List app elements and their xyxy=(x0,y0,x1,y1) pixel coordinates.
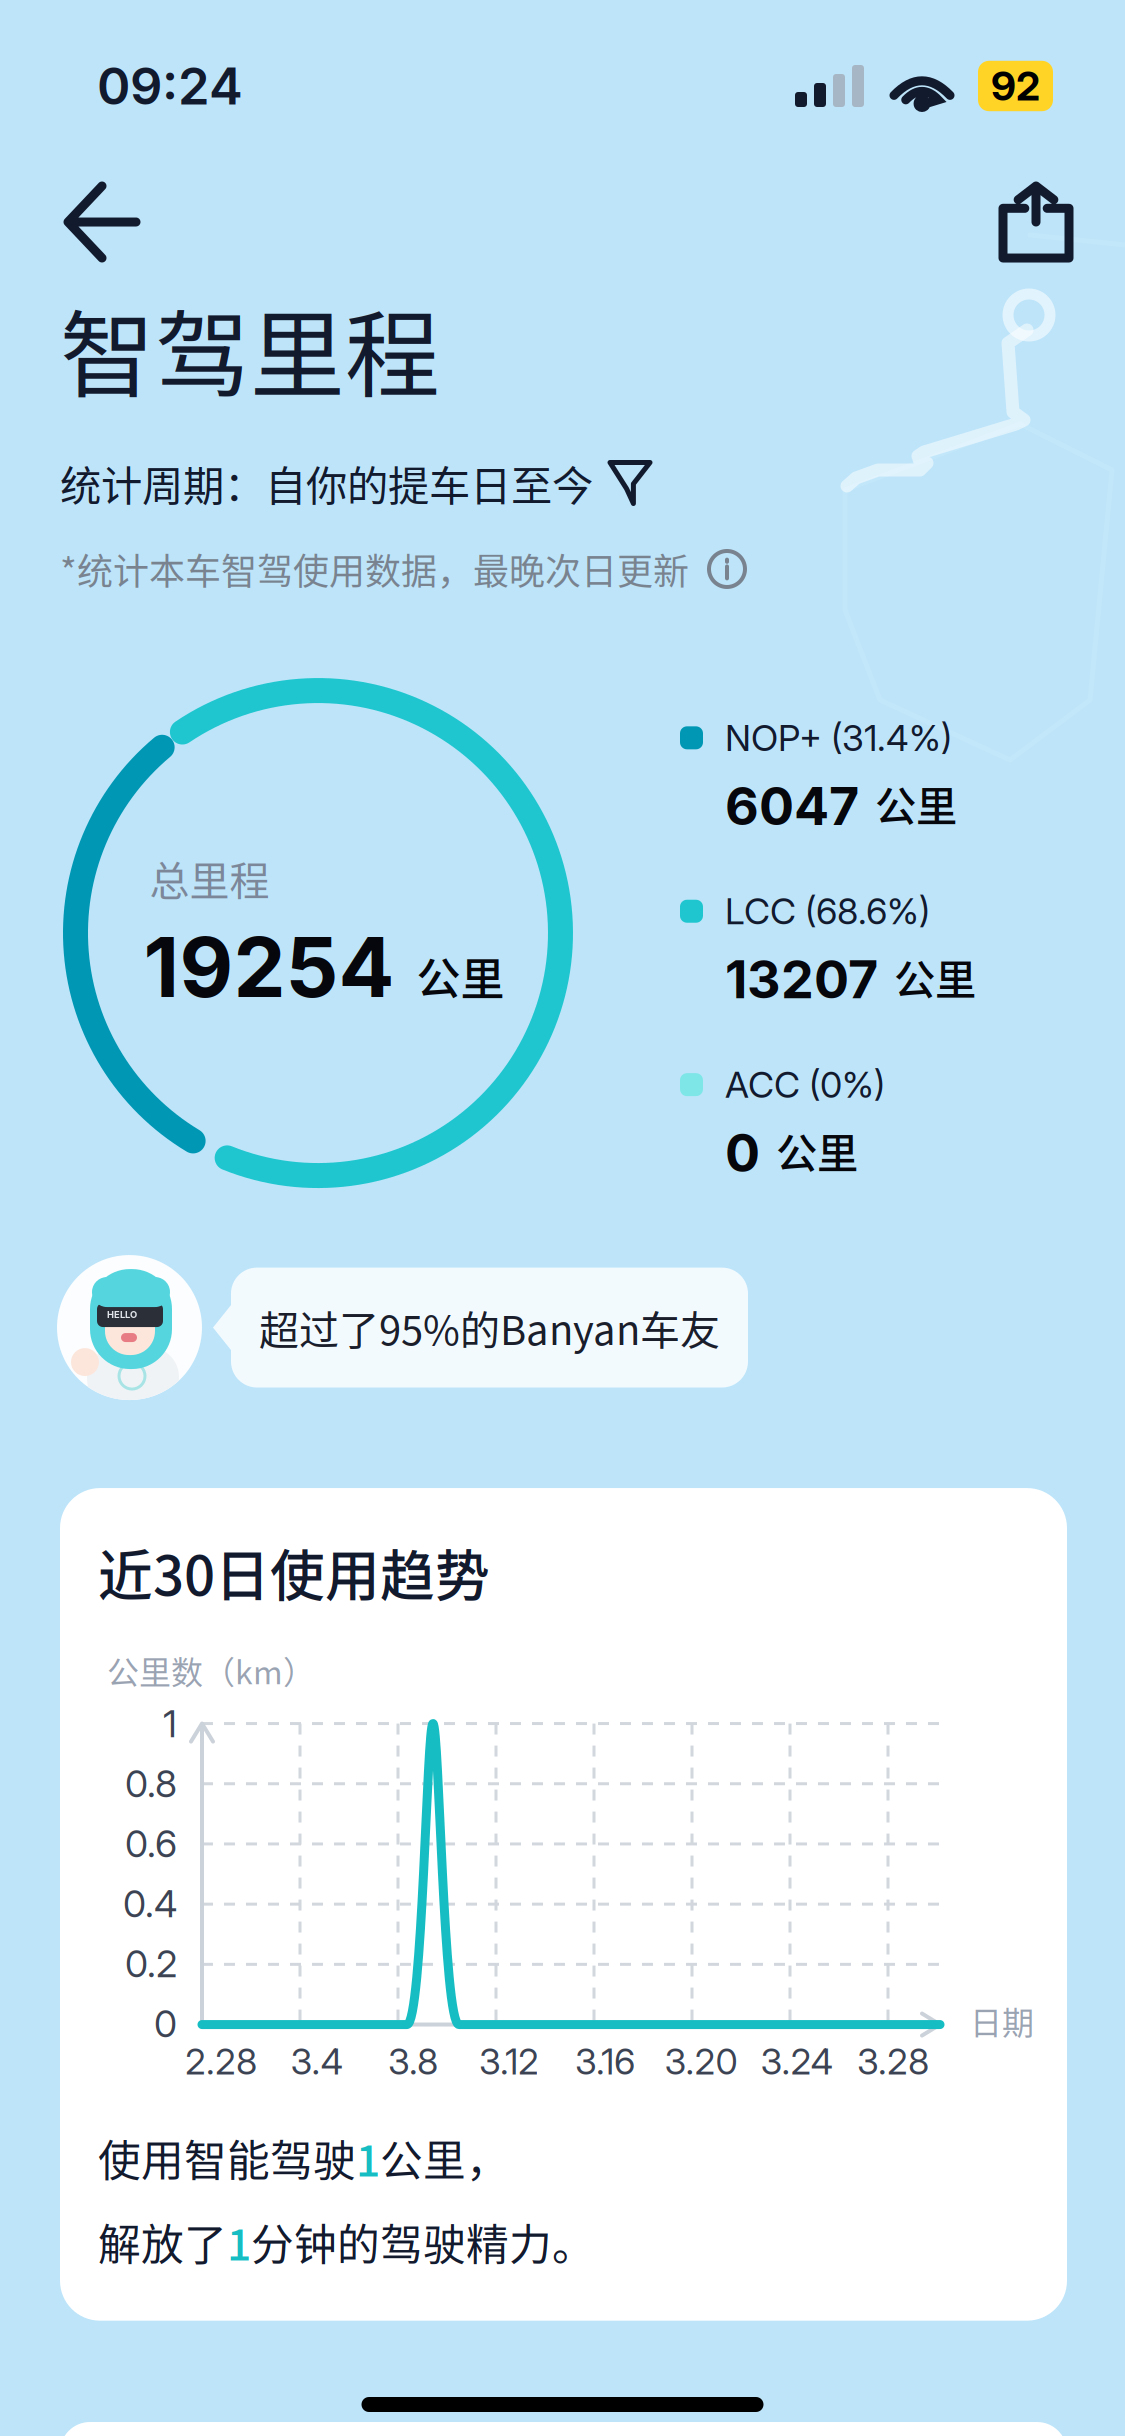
staticText: 3.20 xyxy=(664,2039,737,2083)
staticText: 公里 xyxy=(416,944,504,1008)
staticText: LCC (68.6%) xyxy=(725,889,930,933)
staticText: 6047 xyxy=(725,774,859,837)
staticText: 近30日使用趋势 xyxy=(98,1532,490,1611)
staticText: 0.4 xyxy=(123,1881,177,1926)
button[interactable]: Share xyxy=(993,172,1079,272)
staticText: 分钟的驾驶精力。 xyxy=(251,2211,595,2273)
staticText: 智驾里程 xyxy=(60,280,440,417)
staticText: 解放了 xyxy=(98,2211,227,2273)
staticText: 超过了95%的Banyan车友 xyxy=(259,1299,720,1356)
staticText: 13207 xyxy=(725,948,878,1011)
staticText: 总里程 xyxy=(149,849,269,907)
staticText: 3.12 xyxy=(479,2039,539,2083)
staticText: 公里 xyxy=(894,947,976,1007)
staticText: 92 xyxy=(991,62,1040,110)
staticText: 0 xyxy=(725,1121,760,1184)
staticText: ACC (0%) xyxy=(725,1063,885,1106)
staticText: 3.28 xyxy=(857,2039,929,2083)
button[interactable]: Back xyxy=(43,172,161,272)
staticText: 1 xyxy=(227,2211,251,2273)
staticText: 公里 xyxy=(776,1120,858,1180)
staticText: 0.8 xyxy=(125,1761,177,1806)
staticText: 日期 xyxy=(970,1997,1034,2044)
staticText: 19254 xyxy=(143,917,394,1017)
staticText: 1 xyxy=(163,1701,177,1746)
staticText: 0.6 xyxy=(125,1821,177,1866)
staticText: 0 xyxy=(154,2001,177,2046)
staticText: *统计本车智驾使用数据，最晚次日更新 xyxy=(60,543,689,595)
staticText: 0.2 xyxy=(125,1941,177,1986)
staticText: 3.16 xyxy=(575,2039,635,2083)
staticText: 3.24 xyxy=(760,2039,833,2083)
staticText: HELLO xyxy=(107,1309,137,1320)
staticText: 2.28 xyxy=(185,2039,257,2083)
staticText: NOP+ (31.4%) xyxy=(725,716,952,760)
staticText: 公里数（km） xyxy=(107,1647,315,1693)
staticText: 1 xyxy=(356,2127,380,2189)
staticText: 公里 xyxy=(875,774,957,833)
staticText: 统计周期：自你的提车日至今 xyxy=(60,453,593,513)
staticText: 使用智能驾驶 xyxy=(98,2127,356,2189)
staticText: 公里， xyxy=(380,2127,509,2189)
staticText: 09:24 xyxy=(97,55,243,117)
button[interactable]: 统计周期：自你的提车日至今 xyxy=(60,453,650,513)
staticText: 3.4 xyxy=(290,2039,343,2083)
staticText: 3.8 xyxy=(388,2039,438,2083)
